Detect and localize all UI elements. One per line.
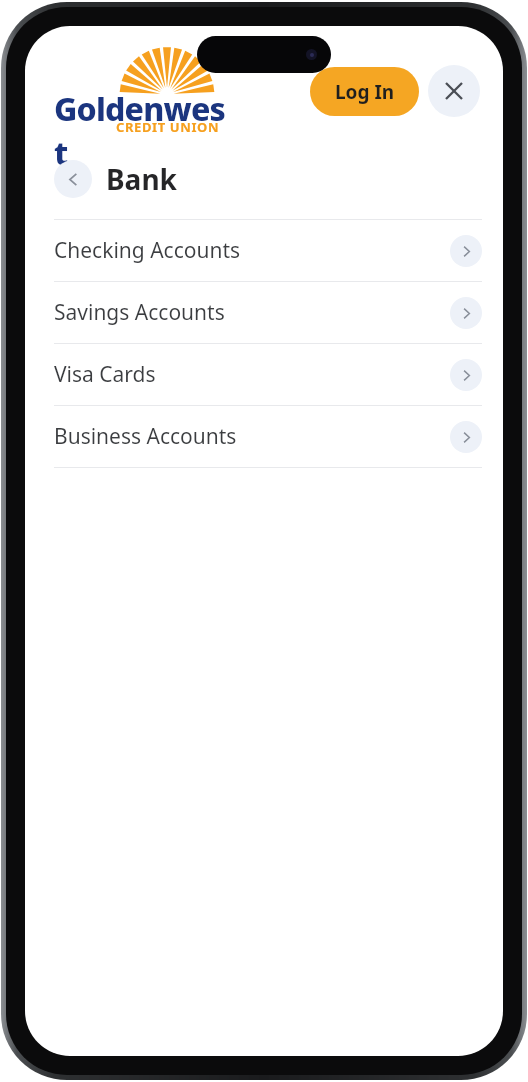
staticText: Bank — [106, 160, 177, 198]
staticText: Visa Cards — [54, 360, 156, 389]
button[interactable]: Business Accounts — [25, 406, 503, 467]
staticText: CREDIT UNION — [116, 118, 220, 136]
staticText: Log In — [335, 79, 395, 105]
button[interactable]: Checking Accounts — [25, 220, 503, 281]
button[interactable]: Close — [428, 65, 480, 117]
button[interactable]: Log In — [310, 67, 419, 116]
staticText: Goldenwest — [54, 87, 230, 171]
button[interactable]: Back — [54, 160, 92, 198]
button[interactable]: Savings Accounts — [25, 282, 503, 343]
staticText: Business Accounts — [54, 422, 237, 451]
button[interactable]: Visa Cards — [25, 344, 503, 405]
button[interactable]: Goldenwest — [54, 49, 230, 133]
staticText: Savings Accounts — [54, 298, 225, 327]
staticText: Checking Accounts — [54, 236, 241, 265]
